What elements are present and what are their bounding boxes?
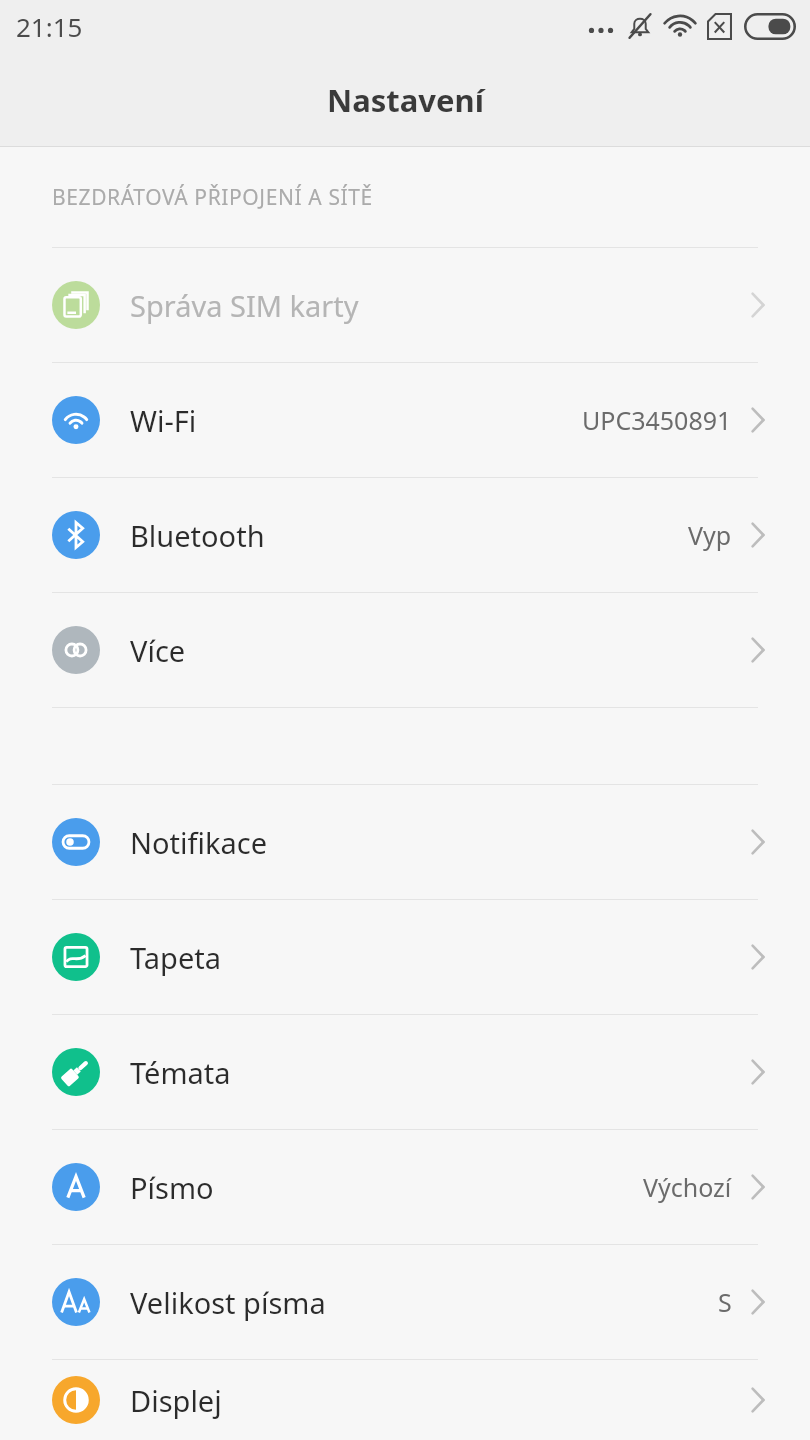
staticText: Wi-Fi bbox=[130, 401, 197, 440]
staticText: S bbox=[718, 1285, 732, 1319]
staticText: BEZDRÁTOVÁ PŘIPOJENÍ A SÍTĚ bbox=[52, 183, 373, 212]
button[interactable]: Písmo bbox=[0, 1130, 810, 1244]
button[interactable]: Displej bbox=[0, 1360, 810, 1440]
staticText: Displej bbox=[130, 1381, 222, 1420]
button[interactable]: Wi-Fi bbox=[0, 363, 810, 477]
button[interactable]: Velikost písma bbox=[0, 1245, 810, 1359]
staticText: 21:15 bbox=[16, 9, 83, 44]
button[interactable]: Tapeta bbox=[0, 900, 810, 1014]
staticText: Témata bbox=[130, 1053, 231, 1092]
button[interactable]: Notifikace bbox=[0, 785, 810, 899]
button[interactable]: Bluetooth bbox=[0, 478, 810, 592]
staticText: Písmo bbox=[130, 1168, 214, 1207]
staticText: Nastavení bbox=[327, 79, 484, 121]
staticText: UPC3450891 bbox=[582, 403, 732, 437]
staticText: Velikost písma bbox=[130, 1283, 326, 1322]
staticText: Bluetooth bbox=[130, 516, 265, 555]
button[interactable]: Témata bbox=[0, 1015, 810, 1129]
staticText: Více bbox=[130, 631, 186, 670]
staticText: Notifikace bbox=[130, 823, 268, 862]
button[interactable]: Více bbox=[0, 593, 810, 707]
button[interactable]: Správa SIM karty bbox=[0, 248, 810, 362]
staticText: Tapeta bbox=[130, 938, 222, 977]
staticText: Správa SIM karty bbox=[130, 286, 359, 325]
staticText: Výchozí bbox=[643, 1170, 732, 1204]
staticText: Vyp bbox=[688, 518, 732, 552]
